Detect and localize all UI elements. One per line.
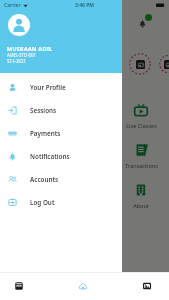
staticText: AMIS-STD-001	[7, 52, 37, 58]
button[interactable]: Story	[9, 53, 31, 75]
staticText: Accounts	[30, 175, 59, 184]
staticText: About	[133, 202, 149, 209]
staticText: About	[21, 202, 37, 209]
staticText: Carrier	[4, 2, 21, 9]
button[interactable]: Home	[73, 274, 93, 298]
staticText: Sessions	[30, 106, 57, 115]
button[interactable]: Accounts	[0, 168, 122, 191]
staticText: Payments	[30, 129, 61, 138]
button[interactable]: Transactions	[57, 143, 113, 169]
button[interactable]: Notifications	[0, 145, 122, 168]
button[interactable]: Gallery	[137, 274, 157, 298]
staticText: Your Profile	[30, 83, 66, 92]
button[interactable]: About	[113, 183, 169, 209]
button[interactable]: Payments	[0, 122, 122, 145]
staticText: Live Classes	[126, 122, 157, 129]
button[interactable]: Sessions	[0, 99, 122, 122]
staticText: ST-I-2021	[7, 58, 27, 64]
button[interactable]: Log Out	[0, 191, 122, 214]
staticText: MUSKAAN ADIL	[7, 45, 53, 52]
button[interactable]: Story	[39, 53, 61, 75]
staticText: Notifications	[30, 152, 70, 161]
button[interactable]: Live Classes	[113, 103, 169, 129]
button[interactable]: Your Profile	[0, 76, 122, 99]
button[interactable]: Transactions	[113, 143, 169, 169]
button[interactable]: Wallet	[9, 274, 29, 298]
button[interactable]: Notifications	[138, 19, 147, 28]
button[interactable]: Story	[129, 53, 151, 75]
button[interactable]: Live Classes	[0, 103, 57, 129]
button[interactable]: About	[0, 183, 57, 209]
button[interactable]: Story	[159, 53, 169, 75]
button[interactable]: Story	[99, 53, 121, 75]
staticText: Log Out	[30, 198, 55, 207]
button[interactable]: Transactions	[0, 143, 57, 169]
staticText: 3:46 PM	[75, 2, 94, 9]
staticText: Transactions	[125, 162, 158, 169]
button[interactable]: Story	[69, 53, 91, 75]
